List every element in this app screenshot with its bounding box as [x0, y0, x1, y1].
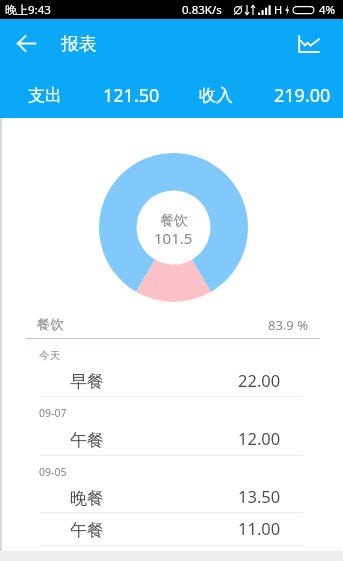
staticText: 09-07: [39, 406, 67, 420]
staticText: 午餐: [70, 430, 104, 451]
staticText: 83.9 %: [268, 316, 308, 334]
staticText: 晚餐: [70, 488, 104, 509]
staticText: 09-05: [39, 465, 67, 479]
button[interactable]: 晚餐: [0, 482, 343, 512]
staticText: 101.5: [154, 228, 193, 248]
button[interactable]: Back: [6, 23, 46, 63]
staticText: 支出: [28, 85, 62, 106]
staticText: 13.50: [238, 485, 281, 507]
staticText: 22.00: [238, 369, 281, 391]
staticText: 0.83K/s: [182, 2, 222, 18]
staticText: 早餐: [70, 371, 104, 392]
staticText: 餐饮: [37, 316, 64, 333]
staticText: 报表: [61, 33, 97, 56]
staticText: 晚上9:43: [5, 2, 51, 18]
staticText: H: [274, 2, 283, 17]
button[interactable]: 早餐: [0, 365, 343, 396]
button[interactable]: 餐饮: [0, 311, 343, 338]
staticText: 219.00: [274, 83, 331, 107]
button[interactable]: Chart: [289, 23, 329, 63]
staticText: 午餐: [70, 520, 104, 541]
button[interactable]: 午餐: [0, 423, 343, 455]
staticText: 4%: [319, 2, 336, 18]
button[interactable]: 午餐: [0, 513, 343, 545]
staticText: 收入: [199, 85, 233, 106]
staticText: 12.00: [238, 427, 281, 449]
staticText: 餐饮: [160, 212, 188, 230]
staticText: 今天: [39, 349, 60, 362]
staticText: 11.00: [238, 517, 281, 539]
staticText: 121.50: [103, 83, 160, 107]
